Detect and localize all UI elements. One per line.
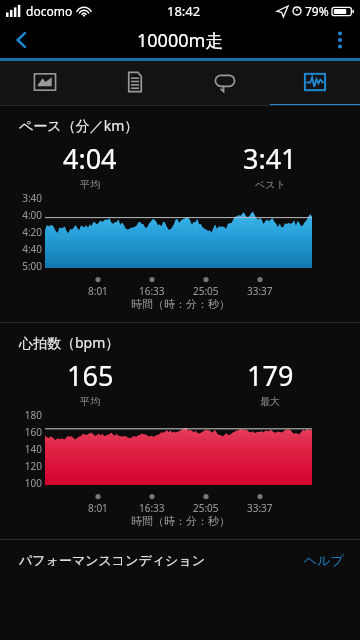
staticText: 3:41 (243, 140, 297, 177)
staticText: 180 (14, 408, 42, 422)
staticText: 時間（時：分：秒） (131, 514, 230, 528)
button[interactable]: More options (320, 22, 360, 58)
staticText: 4:04 (63, 140, 117, 177)
staticText: 4:00 (14, 208, 42, 222)
staticText: 16:33 (139, 284, 165, 298)
staticText: 25:05 (193, 284, 219, 298)
staticText: 100 (14, 476, 42, 490)
staticText: パフォーマンスコンディション (19, 552, 205, 568)
staticText: 10000m走 (137, 28, 224, 53)
staticText: 平均 (80, 178, 100, 191)
staticText: 3:40 (14, 191, 42, 205)
staticText: 8:01 (88, 284, 108, 298)
staticText: 79% (305, 3, 329, 19)
button[interactable]: Details tab (90, 61, 180, 106)
staticText: 160 (14, 425, 42, 439)
staticText: 平均 (80, 395, 100, 408)
staticText: 心拍数（bpm） (19, 333, 120, 352)
staticText: 4:40 (14, 242, 42, 256)
staticText: 120 (14, 459, 42, 473)
staticText: 33:37 (247, 501, 273, 515)
staticText: 時間（時：分：秒） (131, 297, 230, 311)
staticText: 140 (14, 442, 42, 456)
button[interactable]: Back (0, 22, 44, 58)
staticText: 25:05 (193, 501, 219, 515)
staticText: 16:33 (139, 501, 165, 515)
staticText: ベスト (255, 178, 286, 191)
staticText: 18:42 (167, 2, 201, 20)
staticText: 5:00 (14, 259, 42, 273)
staticText: docomo (26, 3, 73, 19)
button[interactable]: Charts tab (270, 61, 360, 106)
staticText: 4:20 (14, 225, 42, 239)
button[interactable]: Laps tab (180, 61, 270, 106)
staticText: 8:01 (88, 501, 108, 515)
staticText: ヘルプ (304, 552, 344, 568)
staticText: 33:37 (247, 284, 273, 298)
staticText: 最大 (260, 395, 280, 408)
staticText: ペース（分／km） (19, 116, 139, 135)
button[interactable]: Map tab (0, 61, 90, 106)
staticText: 165 (67, 357, 114, 394)
staticText: 179 (247, 357, 294, 394)
button[interactable]: パフォーマンスコンディション (0, 540, 360, 580)
